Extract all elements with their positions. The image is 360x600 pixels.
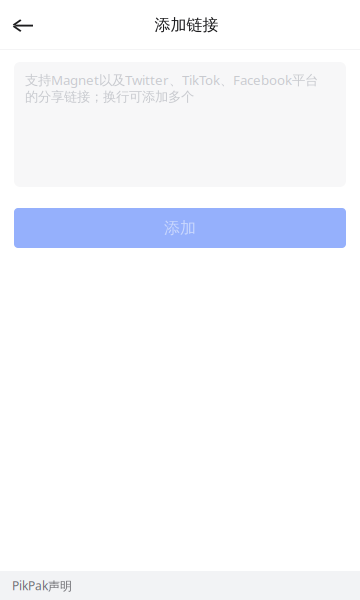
button[interactable]: PikPak声明 xyxy=(0,571,360,600)
staticText: 添加 xyxy=(164,218,196,238)
staticText: 支持Magnet以及Twitter、TikTok、Facebook平台的分享链接… xyxy=(25,71,318,105)
button[interactable]: 支持Magnet以及Twitter、TikTok、Facebook平台的分享链接… xyxy=(14,62,346,187)
button[interactable]: Back xyxy=(0,0,50,50)
button[interactable]: 添加 xyxy=(14,208,346,248)
staticText: PikPak声明 xyxy=(12,577,72,593)
staticText: 添加链接 xyxy=(154,15,218,35)
